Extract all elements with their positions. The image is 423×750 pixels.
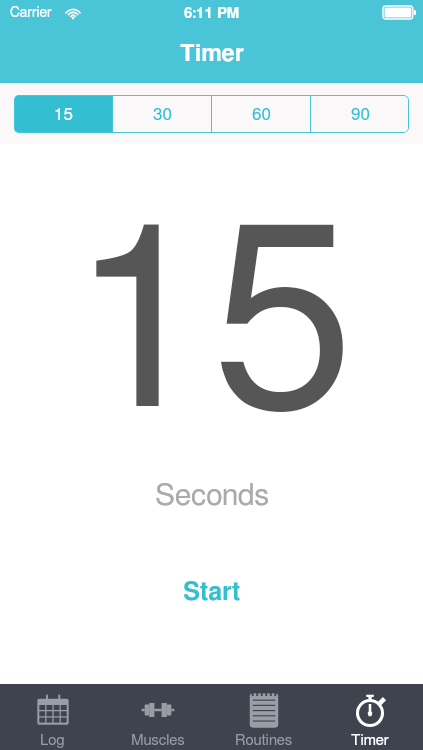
staticText: 15 [54,106,73,123]
button[interactable]: Timer [317,684,423,750]
button[interactable]: 60 [212,95,310,133]
button[interactable]: Muscles [105,684,211,750]
staticText: Carrier [10,6,52,20]
button[interactable]: 15 [14,95,112,133]
staticText: Timer [180,43,244,66]
staticText: Log [40,733,65,748]
staticText: Timer [351,733,389,748]
staticText: Muscles [131,733,185,748]
staticText: Routines [235,733,293,748]
button[interactable]: Routines [211,684,317,750]
staticText: Seconds [155,481,269,511]
staticText: 15 [70,202,354,457]
button[interactable]: 90 [311,95,409,133]
button[interactable]: Start [161,574,263,611]
staticText: 6:11 PM [184,6,240,21]
button[interactable]: Log [0,684,105,750]
button[interactable]: 30 [113,95,211,133]
staticText: Start [183,580,241,605]
staticText: 30 [153,106,172,123]
staticText: 60 [252,106,271,123]
staticText: 90 [351,106,370,123]
